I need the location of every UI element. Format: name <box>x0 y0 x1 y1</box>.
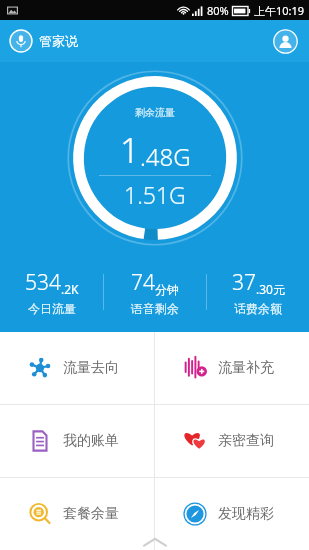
staticText: 37 <box>232 268 256 297</box>
staticText: 剩余流量 <box>135 106 175 119</box>
staticText: .48G <box>140 140 191 173</box>
staticText: 我的账单 <box>63 432 119 450</box>
staticText: 534 <box>25 268 61 297</box>
staticText: 亲密查询 <box>218 432 274 450</box>
staticText: 流量补充 <box>218 359 274 377</box>
staticText: 1.51G <box>124 179 186 210</box>
staticText: 发现精彩 <box>218 505 274 523</box>
button[interactable]: 亲密查询 <box>155 405 309 477</box>
staticText: 74 <box>131 268 155 297</box>
staticText: 分钟 <box>155 282 179 297</box>
button[interactable]: 534 <box>0 266 103 318</box>
staticText: 语音剩余 <box>131 301 179 316</box>
other: 展开更多 <box>142 536 168 548</box>
button[interactable]: 流量补充 <box>155 332 309 404</box>
staticText: 80% <box>207 3 229 18</box>
staticText: 1 <box>120 127 140 173</box>
button[interactable]: 37 <box>207 266 309 318</box>
staticText: 套餐余量 <box>63 505 119 523</box>
button[interactable]: 管家说 <box>0 23 88 59</box>
staticText: 话费余额 <box>234 301 282 316</box>
button[interactable]: 套餐余量 <box>0 478 154 550</box>
button[interactable]: 发现精彩 <box>155 478 309 550</box>
staticText: .2K <box>61 281 79 297</box>
staticText: .30元 <box>256 281 285 297</box>
staticText: 上午10:19 <box>254 3 305 18</box>
staticText: 管家说 <box>39 33 78 49</box>
button[interactable]: 个人中心 <box>269 25 301 57</box>
button[interactable]: 流量去向 <box>0 332 154 404</box>
button[interactable]: 74 <box>104 266 206 318</box>
staticText: 流量去向 <box>63 359 119 377</box>
button[interactable]: 我的账单 <box>0 405 154 477</box>
staticText: 今日流量 <box>28 301 76 316</box>
